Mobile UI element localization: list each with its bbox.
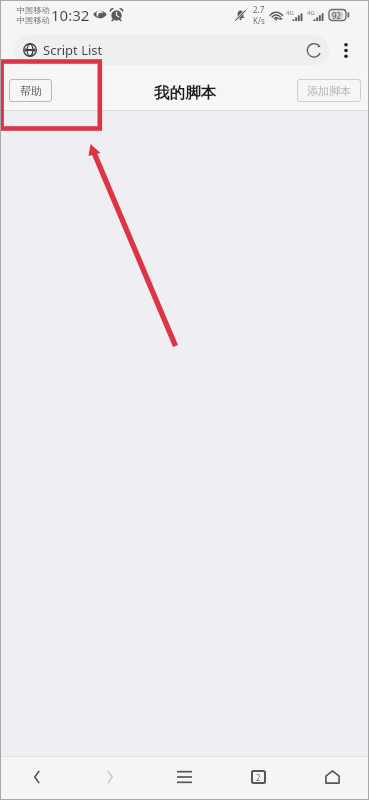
button[interactable]: Script List (14, 41, 299, 59)
button[interactable]: More options (329, 35, 362, 65)
staticText: 4G (307, 9, 315, 17)
staticText: K/s (253, 15, 265, 26)
staticText: 2.7 (253, 4, 265, 15)
staticText: 中国移动 (17, 5, 50, 15)
staticText: 帮助 (20, 84, 42, 98)
staticText: 92 (332, 10, 342, 21)
button[interactable]: Home (295, 757, 369, 796)
staticText: 10:32 (51, 5, 90, 25)
button[interactable]: 添加脚本 (297, 79, 361, 102)
button[interactable]: Menu (147, 757, 221, 796)
staticText: 中国移动 (17, 15, 50, 25)
button[interactable]: Forward (73, 757, 147, 796)
staticText: 我的脚本 (154, 83, 216, 103)
staticText: 2 (256, 772, 261, 783)
button[interactable]: 帮助 (9, 79, 52, 102)
button[interactable]: Tabs (221, 757, 295, 796)
staticText: 添加脚本 (307, 84, 351, 98)
staticText: Script List (43, 41, 103, 59)
button[interactable]: Back (0, 757, 73, 796)
button[interactable]: Refresh (299, 35, 329, 65)
staticText: 4G (286, 9, 294, 17)
